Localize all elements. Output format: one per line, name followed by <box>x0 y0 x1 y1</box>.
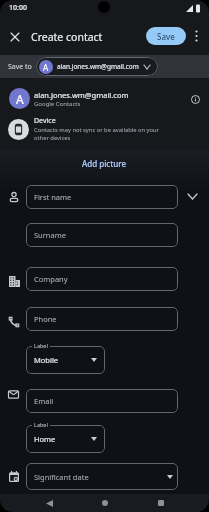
button[interactable] <box>190 28 203 44</box>
staticText: Significant date <box>34 472 89 482</box>
button[interactable]: Significant date <box>26 463 178 490</box>
button[interactable]: Save <box>146 27 186 45</box>
button[interactable]: Phone <box>26 307 178 331</box>
staticText: A <box>16 91 24 107</box>
staticText: Label <box>34 342 48 349</box>
staticText: alan.jones.wm@gmail.com <box>57 62 139 71</box>
staticText: alan.jones.wm@gmail.com <box>34 90 129 100</box>
button[interactable]: Mobile <box>26 346 105 374</box>
staticText: Phone <box>34 314 57 324</box>
staticText: Google Contacts <box>34 100 81 108</box>
staticText: Home <box>34 434 56 444</box>
staticText: Surname <box>34 230 66 240</box>
button[interactable]: Add picture <box>0 154 209 172</box>
button[interactable]: Surname <box>26 223 178 247</box>
staticText: Company <box>34 274 68 284</box>
button[interactable] <box>148 494 174 512</box>
staticText: 10:00 <box>9 3 27 13</box>
button[interactable]: Company <box>26 267 178 291</box>
staticText: Save to <box>8 62 32 72</box>
button[interactable] <box>0 84 209 114</box>
staticText: Create contact <box>31 30 103 44</box>
staticText: Email <box>34 396 54 406</box>
button[interactable] <box>0 114 209 146</box>
button[interactable] <box>5 27 24 46</box>
staticText: Device <box>34 116 56 126</box>
staticText: Contacts may not sync or be available on… <box>34 126 160 134</box>
staticText: A <box>43 62 49 73</box>
staticText: Save <box>157 31 175 42</box>
staticText: First name <box>34 192 72 202</box>
button[interactable]: A <box>36 57 158 76</box>
staticText: Label <box>34 421 48 428</box>
button[interactable] <box>36 494 62 512</box>
staticText: other devices <box>34 134 71 142</box>
button[interactable]: Home <box>26 425 105 453</box>
button[interactable]: First name <box>26 185 178 209</box>
button[interactable]: Email <box>26 389 178 413</box>
staticText: Add picture <box>82 158 127 169</box>
staticText: Mobile <box>34 355 59 365</box>
button[interactable] <box>92 494 118 512</box>
